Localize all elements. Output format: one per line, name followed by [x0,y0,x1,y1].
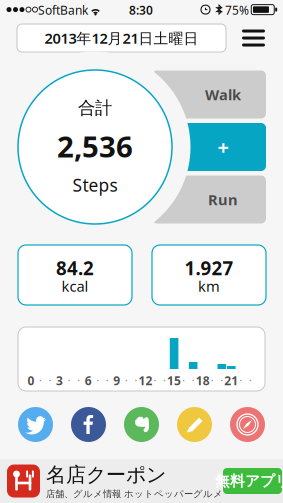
staticText: 18 [196,372,210,388]
staticText: 名店クーポン [46,462,166,487]
staticText: Walk [205,85,241,104]
staticText: + [217,134,228,160]
staticText: 2013年12月21日土曜日 [44,28,198,48]
button[interactable]: 名店クーポン [0,459,283,503]
button[interactable]: + [152,123,266,171]
button[interactable]: 84.2 [18,245,132,305]
staticText: 6 [85,372,92,388]
button[interactable]: 2013年12月21日土曜日 [17,24,226,52]
staticText: 21 [224,372,238,388]
button[interactable]: Browser [230,407,265,442]
staticText: 店舗、グルメ情報 ホットペッパーグルメ [46,488,223,500]
staticText: kcal [61,276,88,296]
staticText: Run [208,190,238,209]
staticText: 9 [113,372,120,388]
button[interactable]: Run [152,175,266,223]
staticText: km [198,276,220,296]
staticText: 84.2 [56,256,94,280]
button[interactable]: 1.927 [152,245,266,305]
staticText: Steps [72,173,117,196]
staticText: 1.927 [184,256,233,280]
button[interactable]: Memo [177,407,212,442]
button[interactable]: Evernote [124,407,159,442]
button[interactable]: Menu [241,24,265,52]
button[interactable]: Facebook [71,407,106,442]
staticText: 0 [27,372,34,388]
staticText: SoftBank [38,2,88,18]
staticText: 2,536 [57,126,133,165]
staticText: 12 [138,372,152,388]
staticText: 15 [167,372,181,388]
button[interactable]: Walk [152,70,266,118]
staticText: 8:30 [129,2,153,18]
button[interactable]: Twitter [18,407,53,442]
staticText: 75% [225,2,249,18]
staticText: 合計 [78,97,112,119]
staticText: 3 [56,372,63,388]
staticText: 無料アプリ [215,472,283,490]
